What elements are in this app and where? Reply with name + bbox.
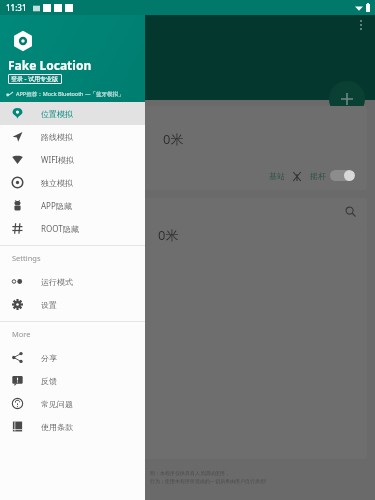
staticText: 使用条款 [41,422,73,432]
staticText: 独立模拟 [41,178,73,188]
staticText: 基站 [269,171,285,181]
staticText: Settings [12,253,41,263]
staticText: 行为；使用本程序所造成的一切后果由用户自行承担! [150,478,267,485]
staticText: 11:31 [6,2,27,13]
button[interactable]: 运行模式 [0,270,145,293]
button[interactable]: 独立模拟 [0,171,145,194]
staticText: More [12,329,31,339]
other: Search [345,206,356,217]
staticText: APP隐藏 [41,200,72,211]
button[interactable]: 反馈 [0,369,145,392]
staticText: 摇杆 [310,171,326,181]
button[interactable]: Add location [329,81,365,117]
button[interactable]: 0米 [8,106,367,190]
button[interactable]: 设置 [0,293,145,316]
staticText: 0米 [163,130,184,148]
staticText: 明：本程序仅供具有人员调试使用， [150,470,230,476]
button[interactable]: 常见问题 [0,392,145,415]
button[interactable]: WIFI模拟 [0,148,145,171]
staticText: 分享 [41,353,57,363]
staticText: 运行模式 [41,277,73,287]
button[interactable]: ROOT隐藏 [0,217,145,240]
staticText: 0米 [158,226,179,244]
staticText: 位置模拟 [41,109,73,119]
staticText: Fake Location [8,57,92,73]
staticText: WIFI模拟 [41,154,75,165]
button[interactable]: 分享 [0,346,145,369]
button[interactable]: 路线模拟 [0,125,145,148]
staticText: APP推荐：Mock Bluetooth —「蓝牙模拟」 [16,90,124,98]
button[interactable]: APP推荐：Mock Bluetooth —「蓝牙模拟」 [6,90,124,98]
staticText: 路线模拟 [41,132,73,142]
staticText: 反馈 [41,376,57,386]
staticText: 登录 - 试用专业版 [11,75,59,83]
button[interactable]: More options [352,16,370,34]
button[interactable]: Joystick toggle [330,170,355,181]
button[interactable]: 登录 - 试用专业版 [8,74,62,84]
staticText: 常见问题 [41,399,73,409]
button[interactable]: APP隐藏 [0,194,145,217]
button[interactable]: Search [8,198,367,225]
button[interactable]: 0米 [8,224,367,459]
button[interactable]: 使用条款 [0,415,145,438]
staticText: ROOT隐藏 [41,223,79,234]
staticText: 设置 [41,300,57,310]
button[interactable]: 位置模拟 [0,102,145,125]
